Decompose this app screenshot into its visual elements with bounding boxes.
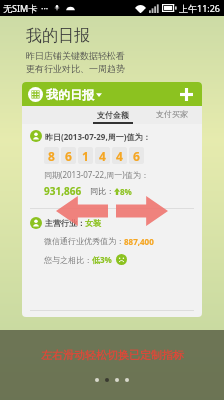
staticText: 6: [133, 148, 140, 164]
staticText: 1: [82, 148, 89, 164]
staticText: 更有行业对比、一周趋势: [26, 63, 125, 74]
staticText: 女装: [85, 218, 101, 228]
staticText: 昨日店铺关键数据轻松看: [26, 50, 125, 61]
staticText: 支付买家: [156, 109, 188, 119]
staticText: 左右滑动轻松切换已定制指标: [41, 348, 184, 362]
staticText: 我的日报: [46, 87, 94, 102]
staticText: 主营行业：: [45, 218, 85, 228]
button[interactable]: 支付金额: [87, 106, 138, 124]
button[interactable]: [125, 378, 129, 382]
button[interactable]: [105, 378, 109, 382]
staticText: 887,400: [124, 236, 154, 247]
button[interactable]: 添加: [176, 84, 196, 104]
staticText: 您与之相比：: [44, 255, 92, 265]
staticText: ···: [41, 2, 49, 14]
staticText: 无SIM卡: [3, 2, 38, 14]
button[interactable]: [115, 378, 119, 382]
staticText: 微信通行业优秀值为：: [44, 236, 124, 246]
staticText: 4: [116, 148, 123, 164]
staticText: 同比：: [90, 186, 114, 196]
staticText: 8%: [120, 186, 132, 197]
staticText: 931,866: [44, 184, 82, 198]
staticText: 4: [99, 148, 106, 164]
staticText: 同期(2013-07-22,周一)值为：: [44, 169, 149, 180]
button[interactable]: 支付买家: [146, 106, 197, 124]
staticText: 低3%: [92, 254, 112, 265]
button[interactable]: [95, 378, 99, 382]
staticText: 昨日(2013-07-29,周一)值为：: [45, 131, 151, 142]
staticText: 8: [48, 148, 55, 164]
staticText: 支付金额: [97, 110, 129, 120]
staticText: 我的日报: [26, 26, 90, 46]
staticText: 6: [65, 148, 72, 164]
staticText: 上午11:26: [179, 2, 221, 14]
button[interactable]: 我的日报: [28, 87, 102, 102]
